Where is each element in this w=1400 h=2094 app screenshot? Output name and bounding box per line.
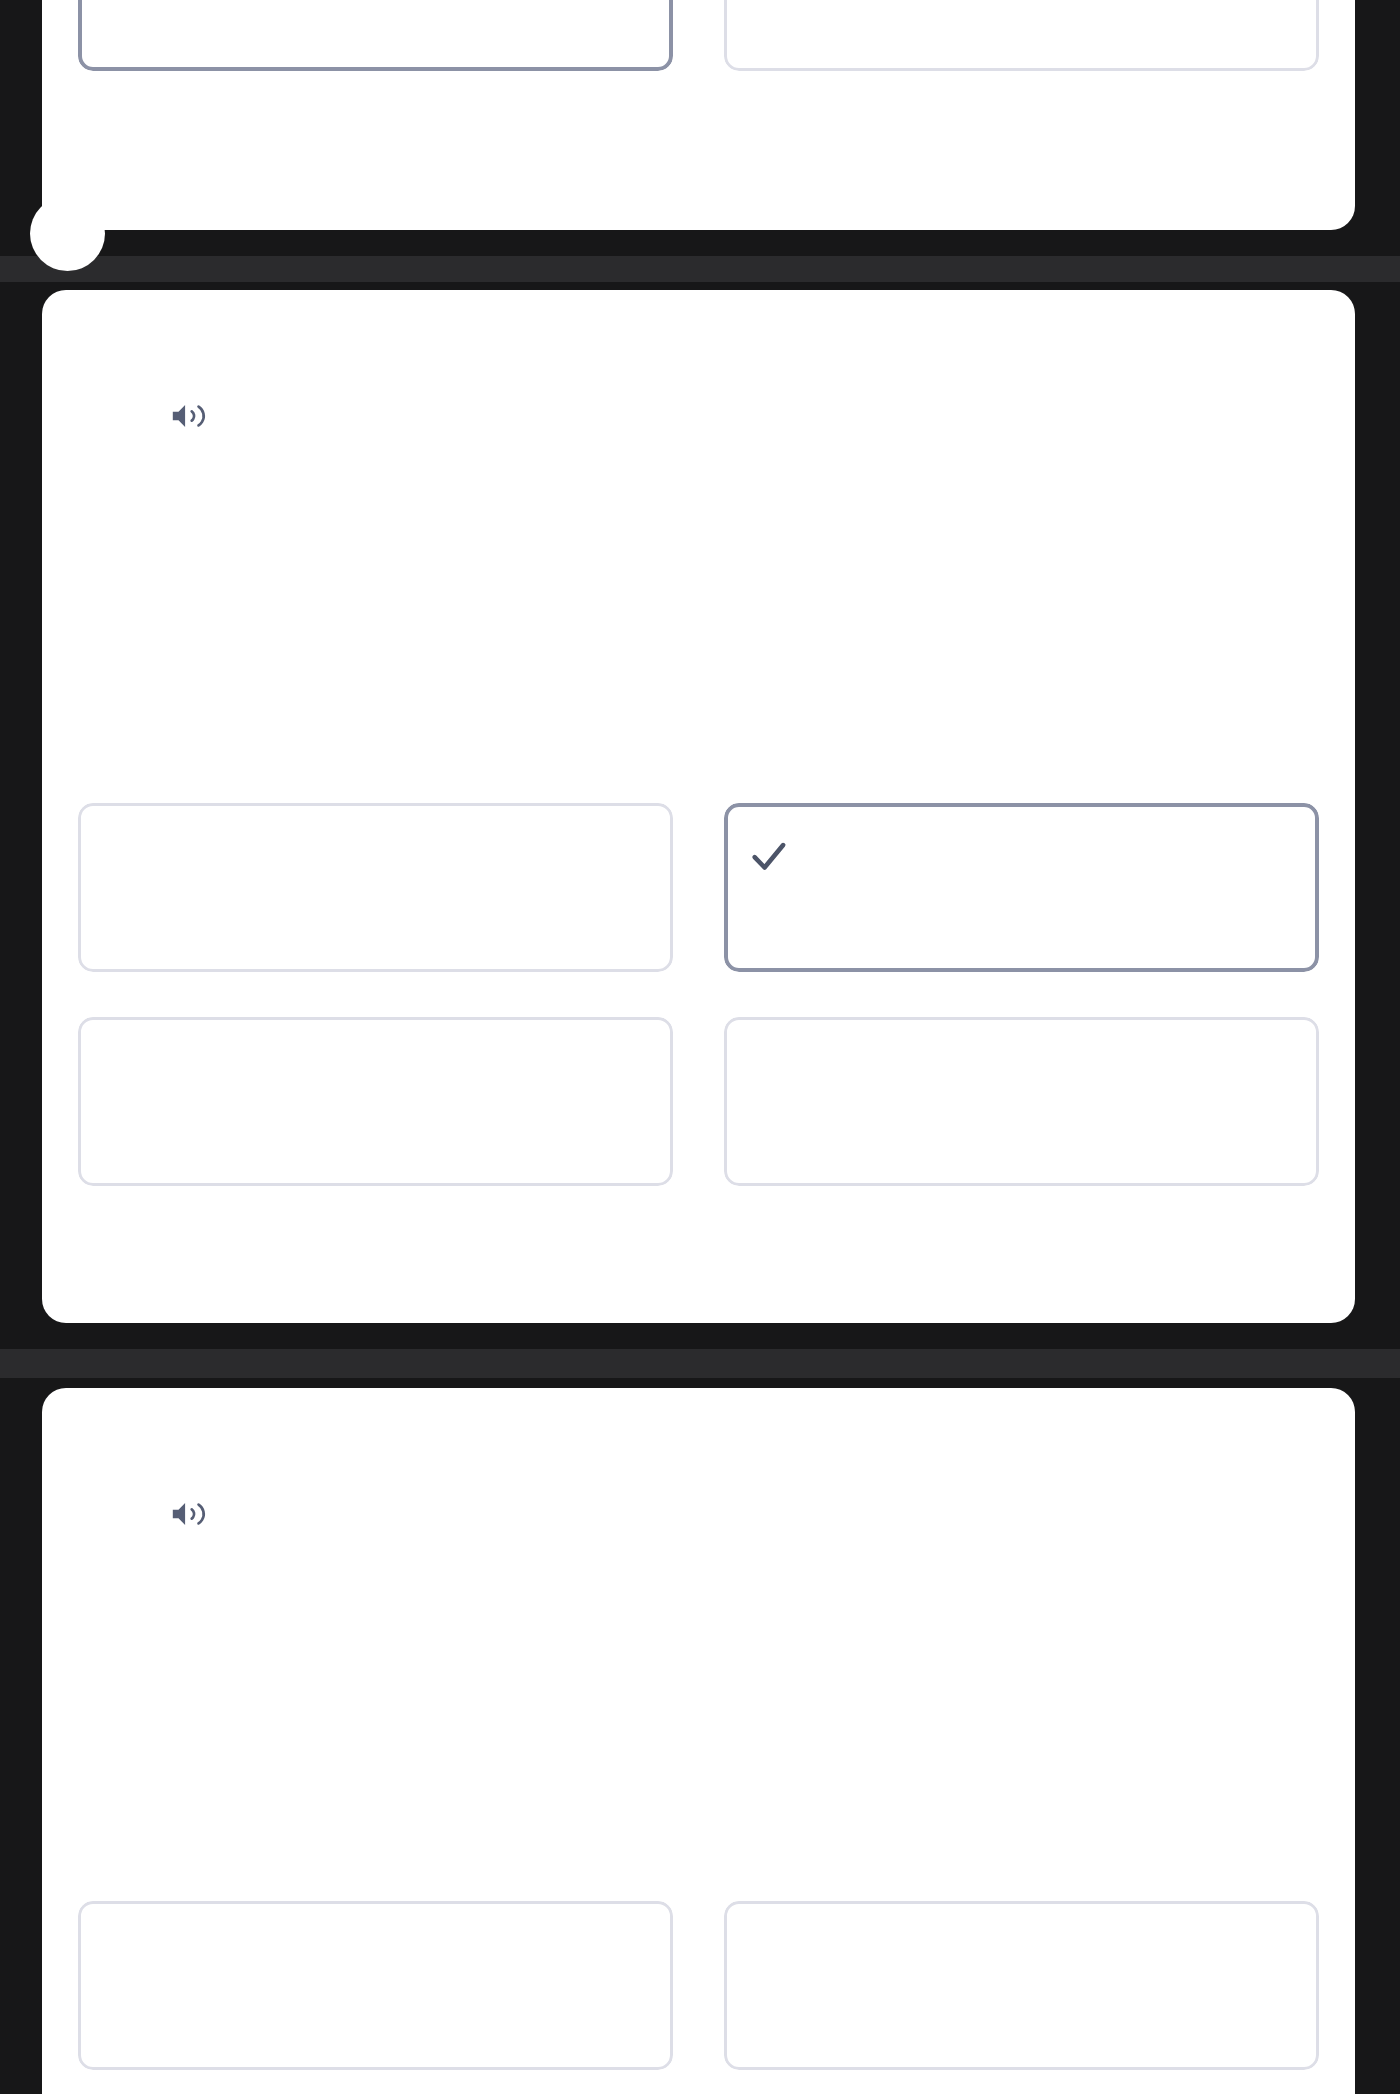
button[interactable]: Answer option: [724, 1017, 1319, 1186]
button[interactable]: Answer option: [78, 803, 673, 972]
button[interactable]: Play audio: [160, 390, 212, 442]
button[interactable]: Continue: [30, 196, 105, 271]
button[interactable]: Selected answer: [78, 0, 673, 71]
button[interactable]: Answer option: [724, 1901, 1319, 2070]
button[interactable]: Answer option: [78, 1901, 673, 2070]
button[interactable]: Answer option: [724, 0, 1319, 71]
button[interactable]: Selected answer: [724, 803, 1319, 972]
button[interactable]: Play audio: [160, 1488, 212, 1540]
button[interactable]: Answer option: [78, 1017, 673, 1186]
